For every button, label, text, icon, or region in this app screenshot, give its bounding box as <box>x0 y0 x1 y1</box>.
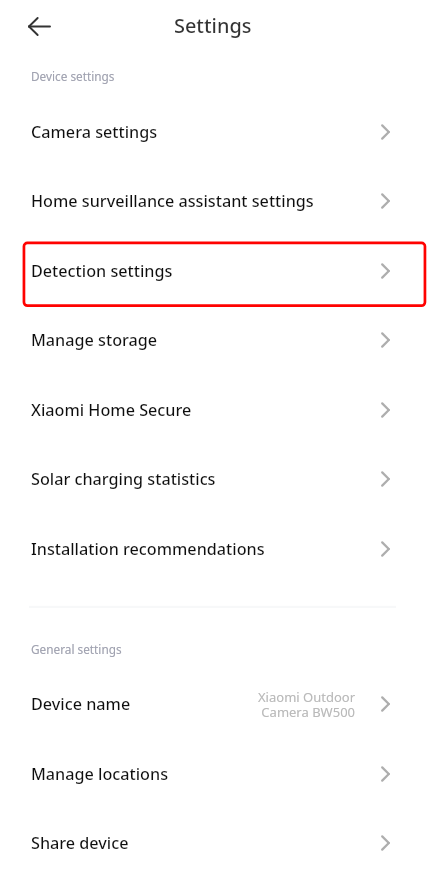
staticText: Device settings <box>31 68 115 84</box>
staticText: Xiaomi Outdoor Camera BW500 <box>258 688 355 721</box>
button[interactable]: Home surveillance assistant settings <box>0 166 439 235</box>
button[interactable]: Share device <box>0 808 439 877</box>
staticText: Xiaomi Home Secure <box>31 399 192 421</box>
staticText: Detection settings <box>31 260 173 282</box>
button[interactable]: Device name <box>0 669 439 738</box>
staticText: Home surveillance assistant settings <box>31 190 314 212</box>
staticText: Installation recommendations <box>31 538 265 560</box>
staticText: Manage locations <box>31 763 169 785</box>
staticText: Share device <box>31 832 129 854</box>
button[interactable]: Manage storage <box>0 305 439 374</box>
button[interactable]: Camera settings <box>0 97 439 166</box>
staticText: General settings <box>31 641 122 657</box>
staticText: Manage storage <box>31 329 158 351</box>
staticText: Device name <box>31 693 131 715</box>
staticText: Camera settings <box>31 121 158 143</box>
button[interactable]: Solar charging statistics <box>0 444 439 513</box>
button[interactable]: Detection settings <box>0 236 439 305</box>
button[interactable]: Xiaomi Home Secure <box>0 375 439 444</box>
button[interactable]: Manage locations <box>0 739 439 808</box>
staticText: Solar charging statistics <box>31 468 216 490</box>
button[interactable]: Back <box>15 2 63 50</box>
staticText: Settings <box>174 12 252 39</box>
button[interactable]: Installation recommendations <box>0 514 439 583</box>
